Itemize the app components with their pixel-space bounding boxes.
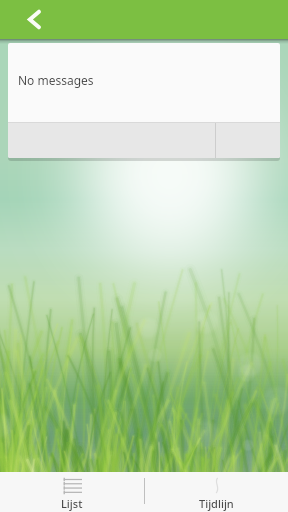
button[interactable]: Back (13, 0, 53, 39)
button[interactable]: Tijdlijn (144, 472, 288, 512)
staticText: Tijdlijn (199, 496, 234, 511)
button[interactable]: Lijst (0, 472, 144, 512)
staticText: No messages (18, 72, 94, 88)
staticText: Lijst (61, 496, 83, 511)
